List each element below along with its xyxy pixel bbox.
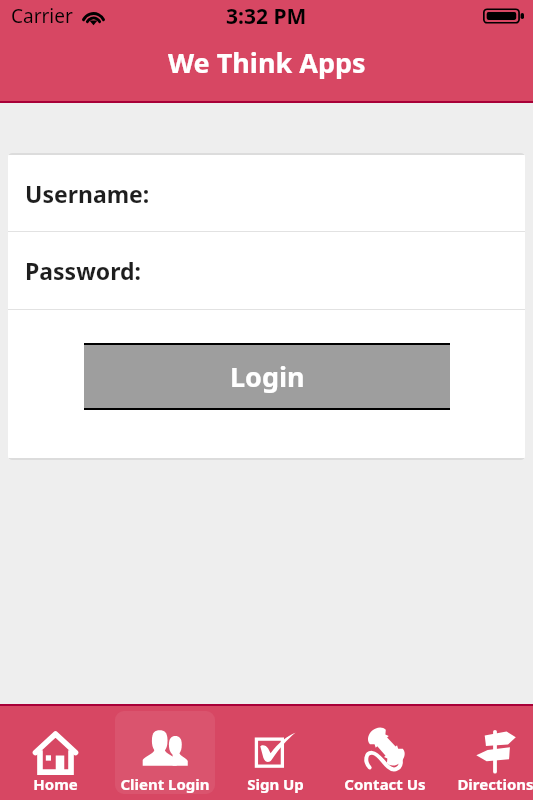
other: Home bbox=[33, 731, 78, 774]
other: Directions bbox=[474, 729, 516, 774]
staticText: We Think Apps bbox=[168, 44, 366, 81]
button[interactable]: Password: bbox=[8, 232, 525, 309]
staticText: 3:32 PM bbox=[226, 2, 307, 31]
staticText: Carrier bbox=[11, 3, 73, 29]
button[interactable]: Username: bbox=[8, 155, 525, 231]
staticText: Client Login bbox=[120, 774, 210, 794]
button[interactable]: Contact Us bbox=[330, 706, 440, 800]
other: Sign Up bbox=[253, 731, 297, 768]
staticText: Directions bbox=[457, 774, 533, 794]
button[interactable]: Sign Up bbox=[220, 706, 330, 800]
staticText: Home bbox=[33, 774, 78, 794]
button[interactable]: Client Login bbox=[110, 706, 220, 800]
button[interactable]: Login bbox=[84, 343, 450, 410]
other: Contact Us bbox=[364, 727, 406, 772]
staticText: Login bbox=[230, 358, 305, 395]
staticText: Username: bbox=[25, 178, 150, 209]
button[interactable]: Directions bbox=[440, 706, 533, 800]
other: Client Login bbox=[142, 731, 188, 766]
staticText: Password: bbox=[25, 255, 142, 286]
staticText: Contact Us bbox=[344, 774, 426, 794]
button[interactable]: Home bbox=[0, 706, 110, 800]
staticText: Sign Up bbox=[247, 774, 304, 794]
